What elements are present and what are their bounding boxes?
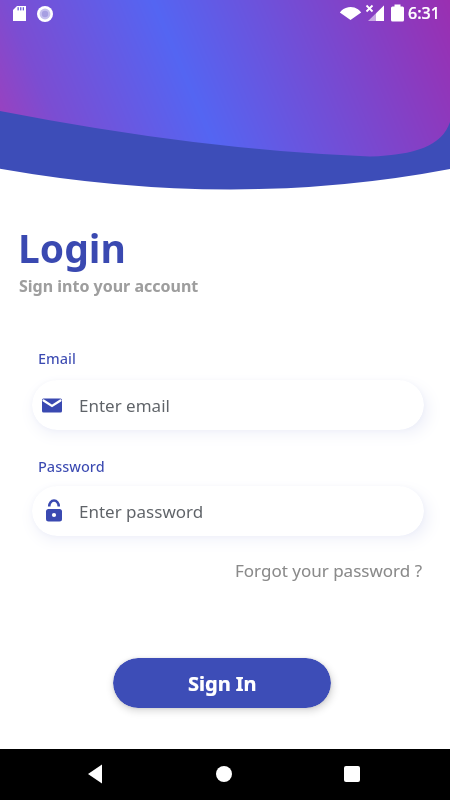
staticText: Sign into your account: [19, 275, 199, 297]
button[interactable]: Sign In: [113, 658, 331, 708]
button[interactable]: Enter email: [32, 380, 424, 430]
staticText: 6:31: [408, 2, 440, 24]
staticText: Password: [38, 456, 105, 476]
button[interactable]: [75, 754, 115, 794]
button[interactable]: [204, 754, 244, 794]
staticText: Sign In: [188, 670, 257, 697]
staticText: Enter password: [79, 500, 204, 523]
button[interactable]: [332, 754, 372, 794]
staticText: Login: [18, 221, 126, 274]
button[interactable]: Enter password: [32, 486, 424, 536]
staticText: Enter email: [79, 394, 170, 417]
staticText: Email: [38, 348, 76, 368]
button[interactable]: Forgot your password ?: [235, 559, 423, 582]
